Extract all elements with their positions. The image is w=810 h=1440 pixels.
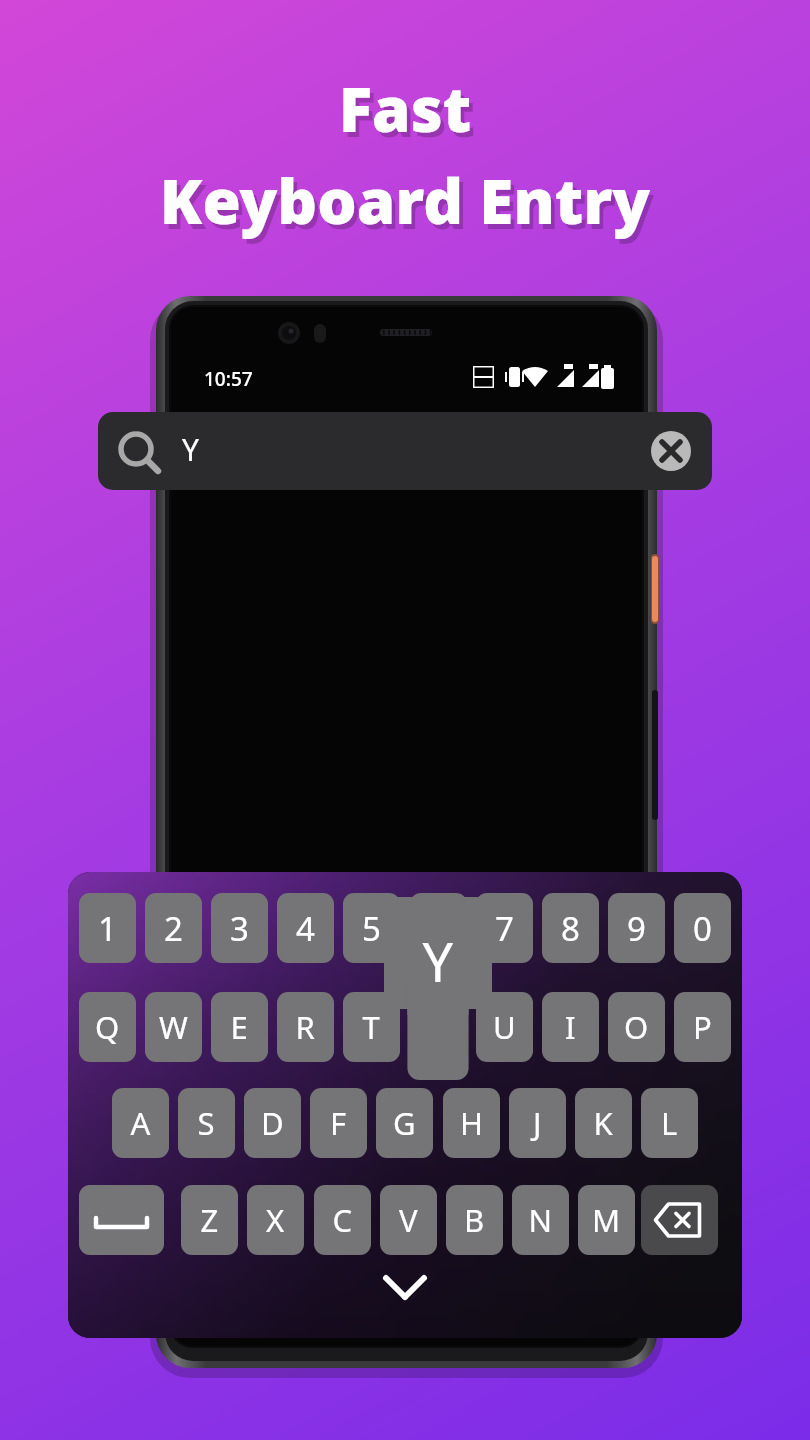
button[interactable] xyxy=(376,1088,433,1158)
button[interactable]: Clear search xyxy=(98,412,712,490)
button[interactable]: Hide keyboard xyxy=(372,1254,438,1320)
button[interactable]: Backspace xyxy=(641,1185,718,1255)
button[interactable] xyxy=(443,1088,500,1158)
button[interactable] xyxy=(476,893,533,963)
button[interactable] xyxy=(380,1185,437,1255)
button[interactable] xyxy=(542,992,599,1062)
button[interactable] xyxy=(145,992,202,1062)
button[interactable] xyxy=(244,1088,301,1158)
button[interactable] xyxy=(277,992,334,1062)
button[interactable]: Y xyxy=(384,897,492,1080)
button[interactable] xyxy=(674,992,731,1062)
button[interactable]: Space xyxy=(79,1185,164,1255)
button[interactable] xyxy=(310,1088,367,1158)
button[interactable] xyxy=(542,893,599,963)
button[interactable] xyxy=(641,1088,698,1158)
button[interactable] xyxy=(410,893,467,963)
button[interactable] xyxy=(181,1185,238,1255)
button[interactable] xyxy=(247,1185,304,1255)
button[interactable] xyxy=(509,1088,566,1158)
button[interactable] xyxy=(512,1185,569,1255)
button[interactable] xyxy=(608,992,665,1062)
button[interactable] xyxy=(446,1185,503,1255)
button[interactable] xyxy=(211,893,268,963)
button[interactable] xyxy=(277,893,334,963)
button[interactable] xyxy=(112,1088,169,1158)
button[interactable] xyxy=(575,1088,632,1158)
button[interactable] xyxy=(343,992,400,1062)
button[interactable] xyxy=(79,992,136,1062)
button[interactable] xyxy=(145,893,202,963)
button[interactable] xyxy=(314,1185,371,1255)
button[interactable] xyxy=(178,1088,235,1158)
button[interactable] xyxy=(476,992,533,1062)
button[interactable] xyxy=(608,893,665,963)
button[interactable] xyxy=(79,893,136,963)
button[interactable] xyxy=(211,992,268,1062)
button[interactable]: Clear search xyxy=(651,431,691,471)
button[interactable] xyxy=(343,893,400,963)
button[interactable] xyxy=(674,893,731,963)
button[interactable] xyxy=(578,1185,635,1255)
